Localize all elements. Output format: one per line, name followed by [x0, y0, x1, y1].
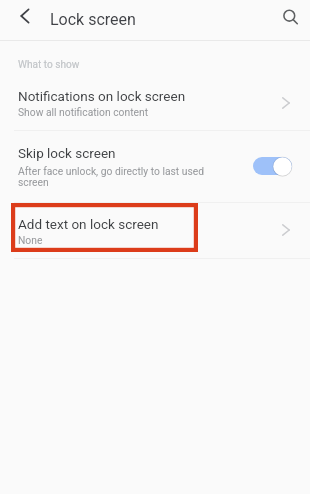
- staticText: After face unlock, go directly to last u…: [18, 165, 205, 189]
- staticText: Notifications on lock screen: [18, 88, 186, 104]
- staticText: What to show: [18, 59, 80, 71]
- staticText: None: [18, 234, 43, 246]
- staticText: Lock screen: [50, 10, 136, 29]
- staticText: Add text on lock screen: [18, 216, 159, 232]
- staticText: Show all notification content: [18, 106, 149, 118]
- button[interactable]: Skip lock screen: [0, 131, 310, 202]
- button[interactable]: Search: [272, 0, 304, 32]
- button[interactable]: Add text on lock screen: [0, 203, 310, 258]
- button[interactable]: Skip lock screen: [249, 152, 295, 180]
- staticText: Skip lock screen: [18, 145, 116, 161]
- button[interactable]: Back: [9, 0, 41, 32]
- button[interactable]: Notifications on lock screen: [0, 41, 310, 130]
